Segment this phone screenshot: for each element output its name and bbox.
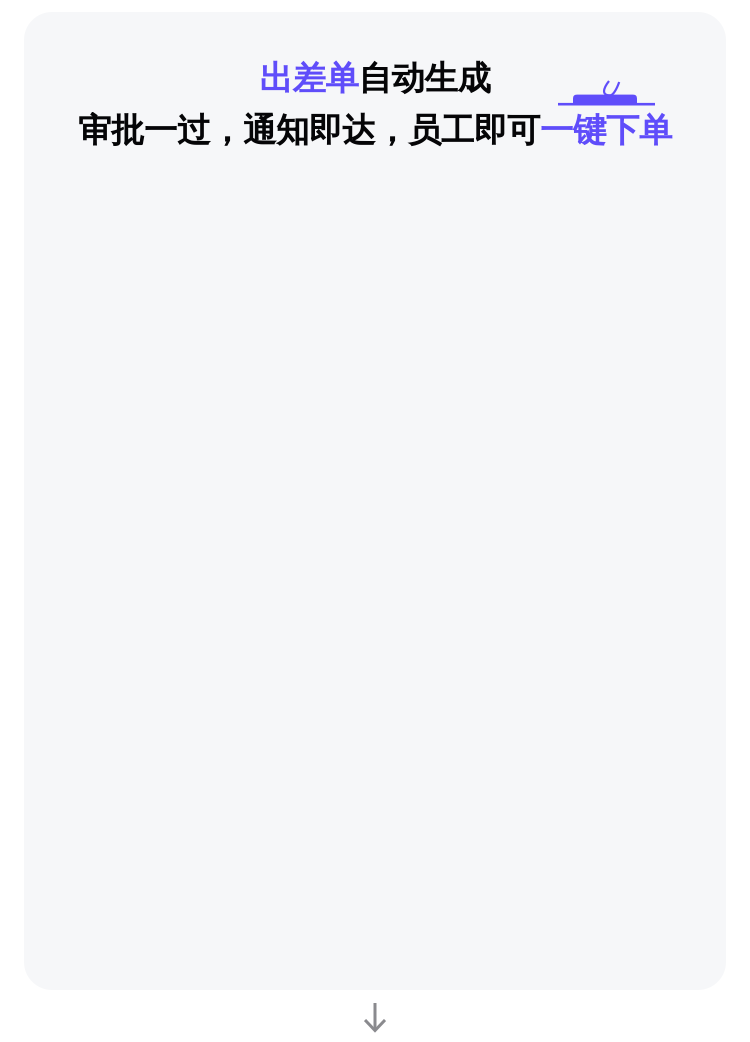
staticText: 自动生成 bbox=[358, 58, 490, 99]
button[interactable]: Scroll down bbox=[360, 1002, 390, 1034]
staticText: 出差单 bbox=[259, 58, 358, 99]
staticText: 审批一过，通知即达，员工即可 bbox=[78, 110, 540, 151]
staticText: 一键下单 bbox=[540, 110, 672, 151]
